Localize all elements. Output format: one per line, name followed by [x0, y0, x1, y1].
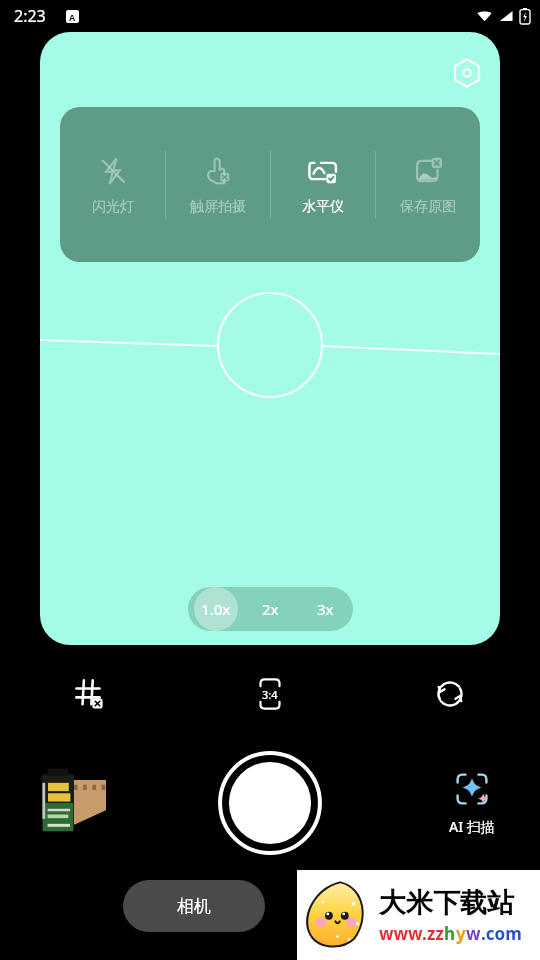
button[interactable]: Gallery: [30, 767, 110, 839]
staticText: 水平仪: [302, 198, 344, 216]
button[interactable]: 闪光灯: [60, 107, 165, 262]
staticText: 大米下载站: [379, 886, 514, 920]
staticText: 触屏拍摄: [190, 198, 246, 216]
staticText: h: [444, 922, 456, 945]
button[interactable]: Aspect ratio 3:4: [247, 671, 293, 717]
staticText: .com: [481, 922, 522, 945]
button[interactable]: 1.0x: [188, 587, 243, 631]
button[interactable]: 3x: [298, 587, 353, 631]
button[interactable]: 水平仪: [271, 107, 375, 262]
staticText: 相机: [177, 896, 211, 917]
staticText: www.: [379, 922, 427, 945]
button[interactable]: Switch camera: [427, 671, 473, 717]
staticText: w: [466, 922, 481, 945]
staticText: y: [456, 922, 466, 945]
button[interactable]: 保存原图: [376, 107, 480, 262]
button[interactable]: 相机: [123, 880, 265, 932]
button[interactable]: 2x: [243, 587, 298, 631]
button[interactable]: Grid off: [67, 671, 113, 717]
staticText: A: [69, 11, 76, 23]
staticText: 保存原图: [400, 198, 456, 216]
staticText: 闪光灯: [92, 198, 134, 216]
staticText: 2x: [262, 599, 279, 619]
button[interactable]: Settings: [450, 56, 484, 90]
staticText: 2:23: [14, 5, 46, 27]
button[interactable]: AI 扫描: [427, 769, 517, 836]
staticText: 3x: [317, 599, 334, 619]
button[interactable]: 触屏拍摄: [166, 107, 270, 262]
staticText: 1.0x: [201, 599, 231, 619]
staticText: 3:4: [262, 687, 278, 702]
button[interactable]: Shutter: [218, 751, 322, 855]
staticText: zz: [427, 922, 444, 945]
staticText: AI 扫描: [449, 817, 495, 836]
